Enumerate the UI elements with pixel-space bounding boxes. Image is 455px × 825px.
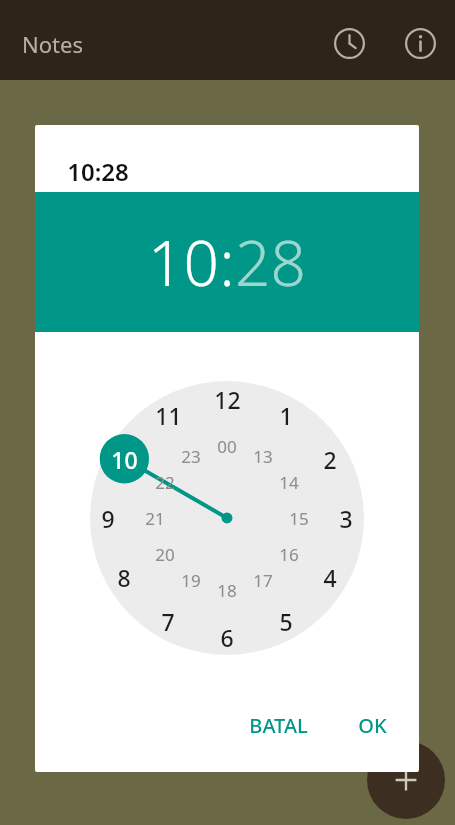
- staticText: 21: [145, 507, 165, 530]
- staticText: Notes: [22, 29, 83, 59]
- button[interactable]: BATAL: [235, 702, 322, 749]
- staticText: 10: [111, 444, 138, 475]
- staticText: 17: [253, 569, 273, 592]
- button[interactable]: Info: [398, 21, 442, 65]
- staticText: 6: [220, 622, 234, 653]
- staticText: 7: [161, 606, 175, 637]
- staticText: 19: [181, 569, 201, 592]
- staticText: OK: [358, 712, 387, 739]
- staticText: 22: [155, 471, 175, 494]
- staticText: 2: [323, 444, 337, 475]
- staticText: 12: [214, 384, 241, 415]
- staticText: 5: [279, 606, 293, 637]
- button[interactable]: OK: [344, 702, 401, 749]
- button[interactable]: History: [327, 21, 371, 65]
- button[interactable]: 1: [90, 381, 364, 655]
- staticText: 20: [155, 543, 175, 566]
- staticText: 10:28: [67, 155, 129, 188]
- staticText: 23: [181, 445, 201, 468]
- staticText: 11: [155, 400, 182, 431]
- staticText: 14: [279, 471, 299, 494]
- button[interactable]: Add note: [367, 741, 445, 819]
- staticText: 8: [117, 562, 131, 593]
- staticText: 16: [279, 543, 299, 566]
- staticText: 1: [279, 400, 293, 431]
- button[interactable]: 28: [235, 220, 306, 304]
- staticText: 13: [253, 445, 273, 468]
- staticText: 00: [217, 435, 237, 458]
- staticText: BATAL: [249, 712, 308, 739]
- staticText: 9: [101, 503, 115, 534]
- staticText: 3: [339, 503, 353, 534]
- staticText: 4: [323, 562, 337, 593]
- staticText: 18: [217, 579, 237, 602]
- button[interactable]: 10: [148, 220, 219, 304]
- staticText: :: [219, 220, 235, 304]
- staticText: 15: [289, 507, 309, 530]
